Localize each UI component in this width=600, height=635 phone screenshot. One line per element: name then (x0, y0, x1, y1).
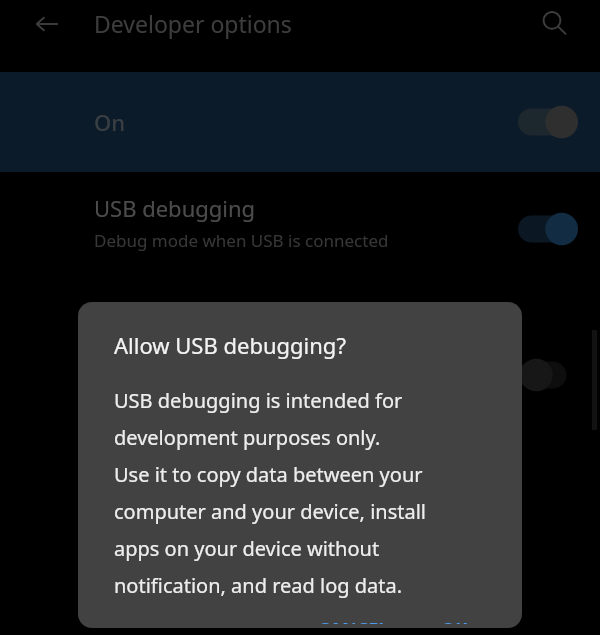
staticText: Use it to copy data between your (114, 461, 423, 488)
staticText: Allow USB debugging? (114, 330, 346, 360)
button[interactable]: Toggle (518, 212, 580, 246)
staticText: computer and your device, install (114, 498, 427, 525)
button[interactable]: On (0, 72, 600, 172)
staticText: OK (441, 617, 468, 624)
button[interactable]: Back (23, 0, 71, 48)
button[interactable]: Toggle (518, 358, 580, 392)
button[interactable]: CANCEL (308, 609, 399, 628)
button[interactable]: Toggle (0, 280, 600, 400)
staticText: CANCEL (318, 617, 389, 624)
staticText: On (94, 107, 126, 137)
button[interactable]: Toggle (518, 105, 580, 139)
button[interactable]: USB debugging (0, 172, 600, 280)
staticText: USB debugging is intended for (114, 387, 403, 414)
staticText: USB debugging (94, 193, 256, 223)
staticText: Debug mode when USB is connected (94, 229, 389, 252)
staticText: development purposes only. (114, 424, 381, 451)
button[interactable]: Search (531, 0, 579, 48)
staticText: notification, and read log data. (114, 572, 403, 599)
button[interactable]: OK (431, 609, 478, 628)
staticText: apps on your device without (114, 535, 380, 562)
staticText: Developer options (94, 8, 292, 39)
